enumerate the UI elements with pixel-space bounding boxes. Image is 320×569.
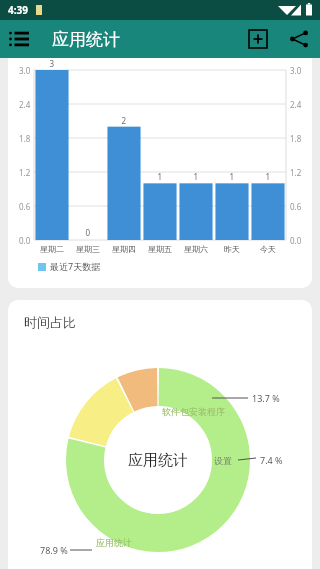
button[interactable]: Add <box>238 20 278 58</box>
button[interactable]: Menu <box>0 20 38 58</box>
button[interactable]: Share <box>278 20 320 58</box>
button[interactable] <box>8 300 312 569</box>
button[interactable] <box>8 58 312 288</box>
